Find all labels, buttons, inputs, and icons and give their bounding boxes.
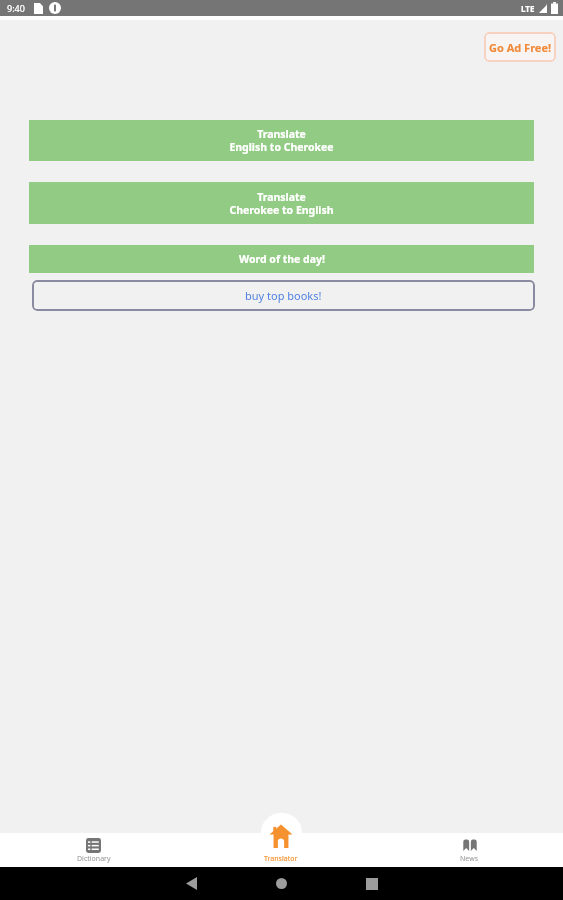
button[interactable]: buy top books! (32, 280, 535, 311)
button[interactable]: Home (265, 867, 298, 900)
staticText: Translator (264, 854, 298, 864)
staticText: 9:40 (7, 2, 25, 14)
button[interactable]: Recent apps (355, 867, 388, 900)
staticText: LTE (521, 3, 535, 14)
staticText: Translate English to Cherokee (229, 127, 334, 154)
staticText: Go Ad Free! (489, 40, 552, 55)
button[interactable]: Dictionary (0, 812, 187, 867)
staticText: Translate Cherokee to English (229, 190, 334, 217)
staticText: Dictionary (77, 854, 111, 864)
staticText: Word of the day! (239, 252, 325, 266)
button[interactable]: Translate Cherokee to English (29, 182, 534, 224)
button[interactable]: Word of the day! (29, 245, 534, 273)
staticText: buy top books! (245, 288, 322, 303)
button[interactable]: Translate English to Cherokee (29, 120, 534, 161)
staticText: News (460, 854, 478, 864)
button[interactable]: Translator (187, 812, 375, 867)
button[interactable]: News (375, 812, 563, 867)
button[interactable]: Back (175, 867, 208, 900)
button[interactable]: Go Ad Free! (484, 32, 556, 62)
